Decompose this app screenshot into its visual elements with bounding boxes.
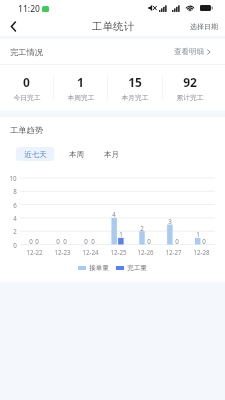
staticText: 0 bbox=[29, 237, 33, 245]
staticText: 工单趋势 bbox=[10, 125, 43, 135]
staticText: 12-24 bbox=[82, 248, 99, 256]
button[interactable]: 0 bbox=[0, 64, 53, 110]
staticText: 选择日期 bbox=[190, 22, 218, 31]
button[interactable]: 15 bbox=[108, 64, 162, 110]
staticText: 今日完工 bbox=[13, 93, 41, 102]
staticText: 11:20 bbox=[18, 3, 40, 15]
staticText: 接单量 bbox=[89, 264, 109, 272]
button[interactable]: 返回 bbox=[0, 17, 26, 36]
staticText: 0 bbox=[91, 237, 95, 245]
staticText: 12-23 bbox=[54, 248, 71, 256]
staticText: 92 bbox=[183, 74, 197, 90]
staticText: 2 bbox=[140, 224, 144, 232]
staticText: 0 bbox=[175, 237, 179, 245]
staticText: 12-22 bbox=[26, 248, 43, 256]
staticText: 1 bbox=[196, 230, 200, 238]
staticText: 8 bbox=[13, 187, 17, 195]
button[interactable]: 近七天 bbox=[16, 147, 54, 161]
staticText: 0 bbox=[35, 237, 39, 245]
staticText: 0 bbox=[13, 241, 17, 249]
staticText: 0 bbox=[23, 74, 30, 90]
staticText: 本月完工 bbox=[121, 93, 149, 102]
staticText: 12-28 bbox=[193, 248, 210, 256]
staticText: 2 bbox=[13, 227, 17, 235]
staticText: 完工情况 bbox=[10, 47, 43, 57]
button[interactable]: 1 bbox=[54, 64, 107, 110]
staticText: 完工量 bbox=[127, 264, 147, 272]
staticText: 近七天 bbox=[24, 150, 47, 159]
button[interactable]: 本月 bbox=[95, 147, 127, 161]
staticText: 12-26 bbox=[137, 248, 154, 256]
staticText: 12-25 bbox=[110, 248, 127, 256]
staticText: 6 bbox=[13, 201, 17, 209]
staticText: 0 bbox=[84, 237, 88, 245]
staticText: 3 bbox=[168, 217, 172, 225]
button[interactable]: 查看明细 bbox=[166, 39, 225, 64]
staticText: 1 bbox=[119, 230, 123, 238]
staticText: 15 bbox=[128, 74, 142, 90]
staticText: 0 bbox=[147, 237, 151, 245]
staticText: 工单统计 bbox=[92, 20, 134, 33]
button[interactable]: 92 bbox=[163, 64, 217, 110]
button[interactable]: 选择日期 bbox=[182, 17, 225, 36]
staticText: 0 bbox=[202, 237, 206, 245]
staticText: 查看明细 bbox=[174, 47, 204, 56]
staticText: 本周 bbox=[69, 150, 84, 159]
staticText: 1 bbox=[77, 74, 84, 90]
staticText: 本周完工 bbox=[67, 93, 95, 102]
staticText: 4 bbox=[112, 210, 116, 218]
staticText: 本月 bbox=[104, 150, 119, 159]
staticText: 0 bbox=[56, 237, 60, 245]
staticText: 12-27 bbox=[165, 248, 182, 256]
button[interactable]: 本周 bbox=[60, 147, 92, 161]
staticText: 4 bbox=[13, 214, 17, 222]
staticText: 10 bbox=[9, 174, 17, 182]
staticText: 0 bbox=[63, 237, 67, 245]
staticText: 累计完工 bbox=[176, 93, 204, 102]
